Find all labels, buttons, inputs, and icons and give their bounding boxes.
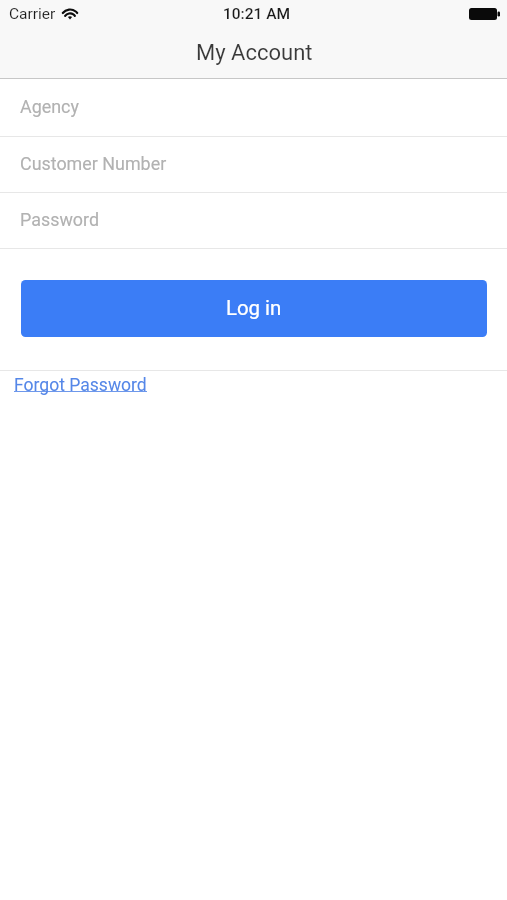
button[interactable]: Forgot Password (0, 371, 507, 405)
staticText: My Account (196, 40, 313, 66)
staticText: Customer Number (20, 153, 167, 174)
other: Wi-Fi (62, 8, 78, 20)
staticText: Log in (226, 296, 282, 320)
staticText: Carrier (9, 5, 56, 23)
other: Battery full (469, 8, 500, 20)
button[interactable]: Customer Number (0, 137, 507, 193)
staticText: 10:21 AM (223, 5, 291, 23)
button[interactable]: Password (0, 193, 507, 249)
staticText: Password (20, 209, 100, 230)
staticText: Agency (20, 96, 79, 117)
button[interactable]: Agency (0, 79, 507, 137)
button[interactable]: Log in (21, 280, 487, 337)
staticText: Forgot Password (14, 375, 147, 396)
